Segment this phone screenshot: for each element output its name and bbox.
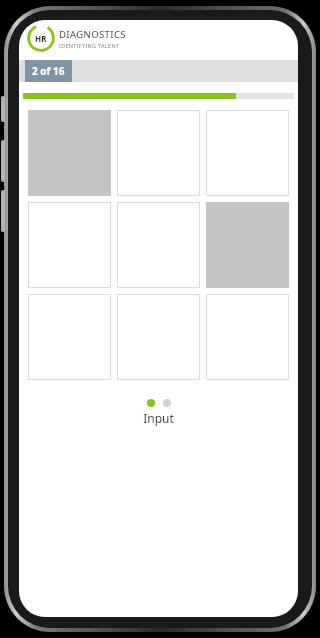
staticText: HR — [35, 33, 47, 44]
button[interactable]: Cell row 3 column 1 — [28, 294, 111, 380]
staticText: IDENTIFYING TALENT — [59, 42, 120, 49]
button[interactable]: Cell row 3 column 2 — [117, 294, 200, 380]
button[interactable]: Cell row 2 column 1 — [28, 202, 111, 288]
button[interactable]: 2 of 16 — [25, 60, 72, 82]
button[interactable]: HR — [19, 20, 298, 60]
staticText: 2 of 16 — [32, 64, 65, 78]
button[interactable]: Cell row 1 column 3 — [206, 110, 289, 196]
button[interactable]: Page 1, current — [147, 399, 155, 407]
button[interactable]: Cell row 2 column 2 — [117, 202, 200, 288]
staticText: Input — [143, 410, 174, 426]
button[interactable]: Page 2 — [163, 399, 171, 407]
button[interactable]: Cell row 3 column 3 — [206, 294, 289, 380]
staticText: DIAGNOSTICS — [59, 28, 126, 41]
button[interactable]: Cell row 1 column 2 — [117, 110, 200, 196]
